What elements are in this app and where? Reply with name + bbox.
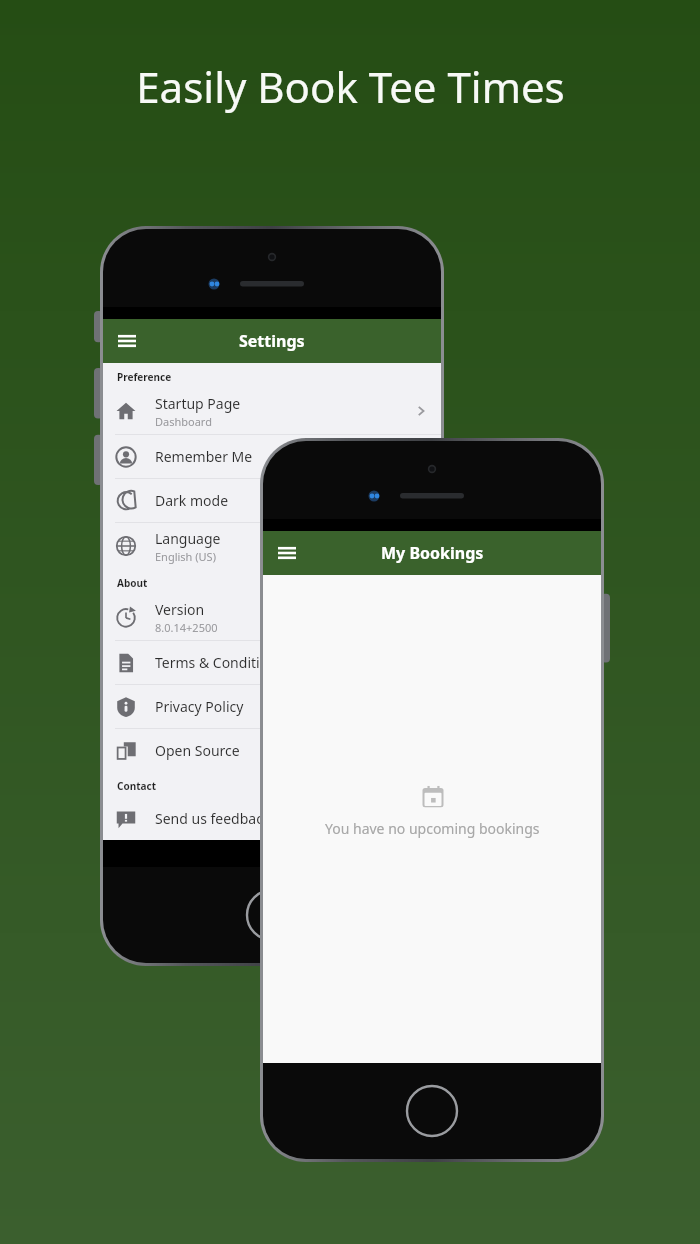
button[interactable]: Privacy Policy — [103, 685, 441, 728]
staticText: Version — [155, 600, 205, 619]
button[interactable]: Open Source — [103, 729, 441, 772]
staticText: About — [117, 576, 148, 590]
staticText: Remember Me — [155, 447, 253, 466]
button[interactable]: Open navigation menu — [267, 533, 307, 573]
button[interactable]: Version — [103, 594, 441, 640]
staticText: Settings — [239, 330, 305, 352]
staticText: Privacy Policy — [155, 697, 244, 716]
staticText: Startup Page — [155, 394, 241, 413]
staticText: 8.0.14+2500 — [155, 620, 218, 635]
button[interactable]: Startup Page — [103, 388, 441, 434]
staticText: Language — [155, 529, 221, 548]
button[interactable]: Dark mode — [103, 479, 441, 522]
staticText: Dashboard — [155, 414, 212, 429]
button[interactable]: Remember Me — [103, 435, 441, 478]
button[interactable]: Open navigation menu — [107, 321, 147, 361]
staticText: English (US) — [155, 549, 216, 564]
staticText: You have no upcoming bookings — [325, 819, 540, 838]
staticText: Terms & Conditions — [155, 653, 284, 672]
button[interactable]: Terms & Conditions — [103, 641, 441, 684]
staticText: Contact — [117, 779, 156, 793]
staticText: Easily Book Tee Times — [136, 58, 565, 115]
staticText: My Bookings — [381, 542, 484, 564]
button[interactable]: Send us feedback — [103, 797, 441, 840]
staticText: Send us feedback — [155, 809, 271, 828]
staticText: Preference — [117, 370, 172, 384]
staticText: Dark mode — [155, 491, 229, 510]
staticText: Open Source — [155, 741, 240, 760]
button[interactable]: Language — [103, 523, 441, 569]
